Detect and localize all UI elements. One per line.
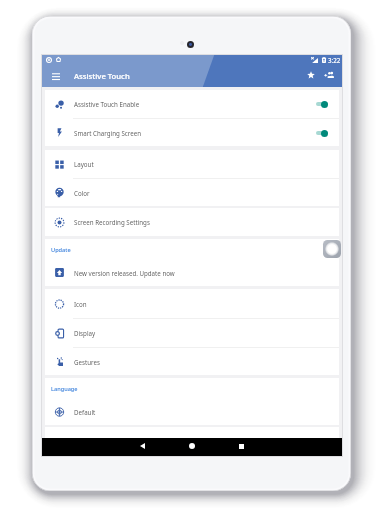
staticText: Layout [74,160,94,168]
staticText: Color [74,189,90,197]
button[interactable]: Icon [45,289,339,318]
button[interactable]: New version released. Update now [45,259,339,286]
staticText: Default [74,408,96,416]
button[interactable]: Menu [48,68,64,84]
button[interactable]: Assistive Touch Enable [45,90,339,118]
button[interactable]: Back [134,438,150,454]
button[interactable]: Favorite [303,67,319,83]
staticText: New version released. Update now [74,269,175,277]
staticText: Icon [74,300,87,308]
button[interactable]: Smart Charging Screen [45,119,339,146]
button[interactable]: Layout [45,150,339,178]
button[interactable]: Recents [233,438,249,454]
staticText: Assistive Touch [74,71,130,81]
staticText: 3:22 [328,56,341,63]
button[interactable]: Assistive touch button [323,240,341,258]
button[interactable]: Toggle [314,99,330,109]
staticText: Update [51,246,71,254]
staticText: Assistive Touch Enable [74,100,140,108]
button[interactable]: Toggle [314,128,330,138]
staticText: Smart Charging Screen [74,129,141,137]
button[interactable]: Default [45,398,339,425]
staticText: Display [74,329,96,337]
button[interactable]: Gestures [45,348,339,375]
staticText: Screen Recording Settings [74,218,150,226]
staticText: Gestures [74,358,100,366]
button[interactable]: Display [45,319,339,347]
staticText: Language [51,385,78,393]
button[interactable]: Home [184,438,200,454]
button[interactable]: Color [45,179,339,206]
button[interactable]: Screen Recording Settings [45,208,339,236]
button[interactable]: Add person [321,67,337,83]
